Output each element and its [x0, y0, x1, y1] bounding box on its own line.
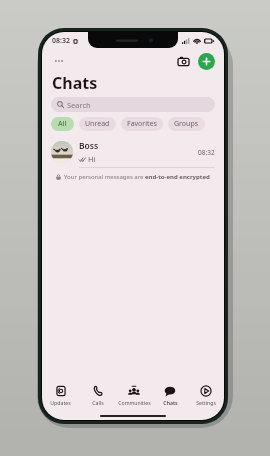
- staticText: Hi: [88, 154, 96, 164]
- button[interactable]: All: [51, 117, 74, 131]
- button[interactable]: Search: [51, 97, 215, 112]
- staticText: Favorites: [127, 119, 157, 129]
- staticText: Groups: [174, 119, 199, 129]
- button[interactable]: Boss: [42, 137, 224, 167]
- staticText: Your personal messages are: [64, 173, 145, 181]
- staticText: Chats: [163, 399, 178, 406]
- button[interactable]: Calls: [79, 381, 116, 411]
- button[interactable]: More options: [51, 53, 67, 69]
- button[interactable]: Groups: [168, 117, 205, 131]
- staticText: Boss: [79, 140, 99, 152]
- button[interactable]: New chat: [198, 53, 215, 70]
- button[interactable]: Settings: [188, 381, 224, 411]
- staticText: Chats: [52, 72, 98, 94]
- staticText: 08:32: [52, 36, 70, 46]
- staticText: Settings: [196, 399, 216, 406]
- staticText: Search: [67, 100, 91, 110]
- button[interactable]: Communities: [116, 381, 152, 411]
- button[interactable]: Updates: [42, 381, 79, 411]
- staticText: All: [58, 119, 67, 129]
- button[interactable]: Unread: [79, 117, 116, 131]
- button[interactable]: Camera: [175, 53, 192, 70]
- button[interactable]: Favorites: [121, 117, 163, 131]
- staticText: 08:32: [198, 148, 215, 157]
- staticText: end-to-end encrypted: [145, 173, 210, 181]
- staticText: Calls: [92, 399, 104, 406]
- button[interactable]: Chats: [152, 381, 188, 411]
- staticText: Unread: [85, 119, 110, 129]
- staticText: Communities: [118, 399, 151, 406]
- staticText: Updates: [50, 399, 71, 406]
